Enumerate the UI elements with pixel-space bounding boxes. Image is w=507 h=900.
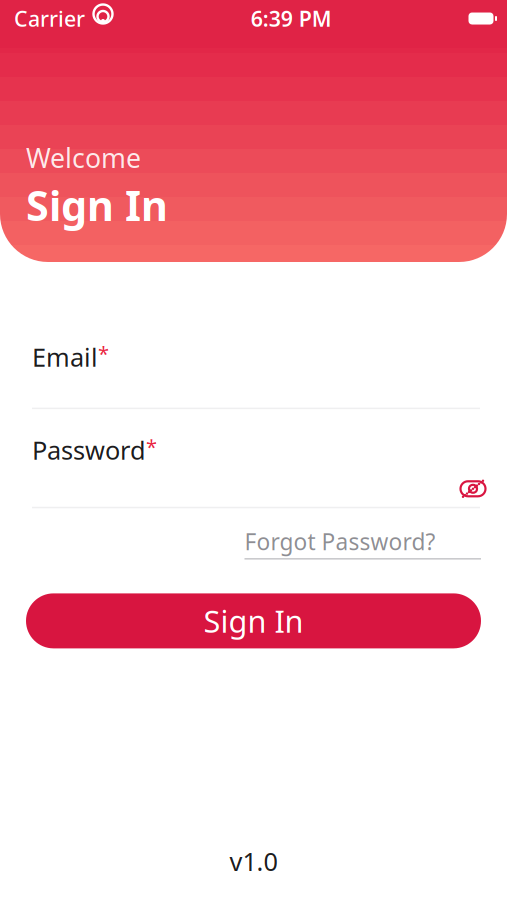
button[interactable]: Sign In [26,593,481,648]
staticText: 6:39 PM [251,4,332,33]
staticText: Email [32,340,98,374]
staticText: * [146,433,157,460]
staticText: Welcome [26,140,141,175]
button[interactable]: Show password [453,475,493,503]
button[interactable]: Forgot Password? [244,526,481,559]
staticText: Password [32,433,146,467]
staticText: Sign In [26,177,168,232]
staticText: * [98,340,109,367]
staticText: v1.0 [229,844,277,878]
staticText: Carrier [14,4,85,33]
staticText: Forgot Password? [244,526,435,556]
staticText: Sign In [203,600,303,641]
